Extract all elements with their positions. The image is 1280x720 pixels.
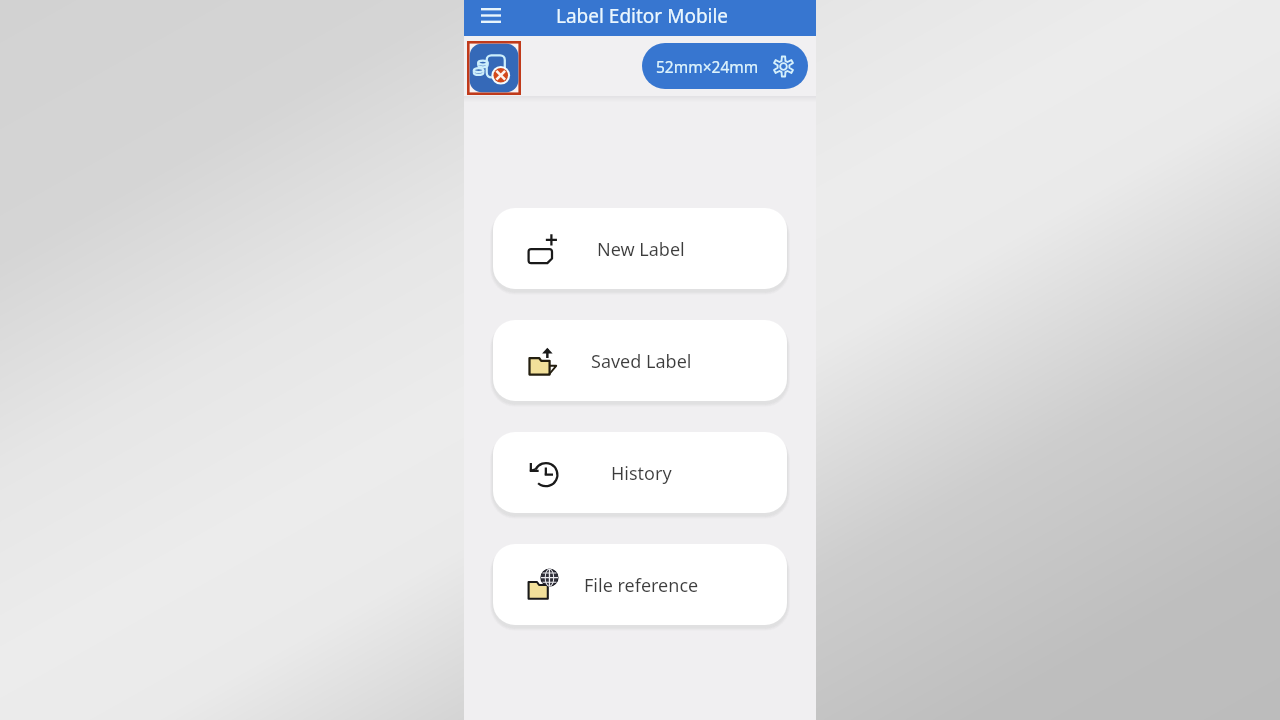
button[interactable]: Menu — [475, 0, 507, 31]
staticText: History — [611, 461, 672, 486]
staticText: New Label — [597, 237, 685, 262]
staticText: Saved Label — [591, 349, 692, 374]
staticText: Label Editor Mobile — [556, 3, 729, 29]
button[interactable]: Saved Label — [493, 320, 787, 401]
button[interactable]: File reference — [493, 544, 787, 625]
staticText: File reference — [584, 573, 699, 598]
button[interactable]: Printer not connected — [466, 40, 522, 96]
staticText: 52mm×24mm — [656, 56, 759, 77]
button[interactable]: History — [493, 432, 787, 513]
button[interactable]: 52mm×24mm — [642, 43, 808, 89]
button[interactable]: New Label — [493, 208, 787, 289]
